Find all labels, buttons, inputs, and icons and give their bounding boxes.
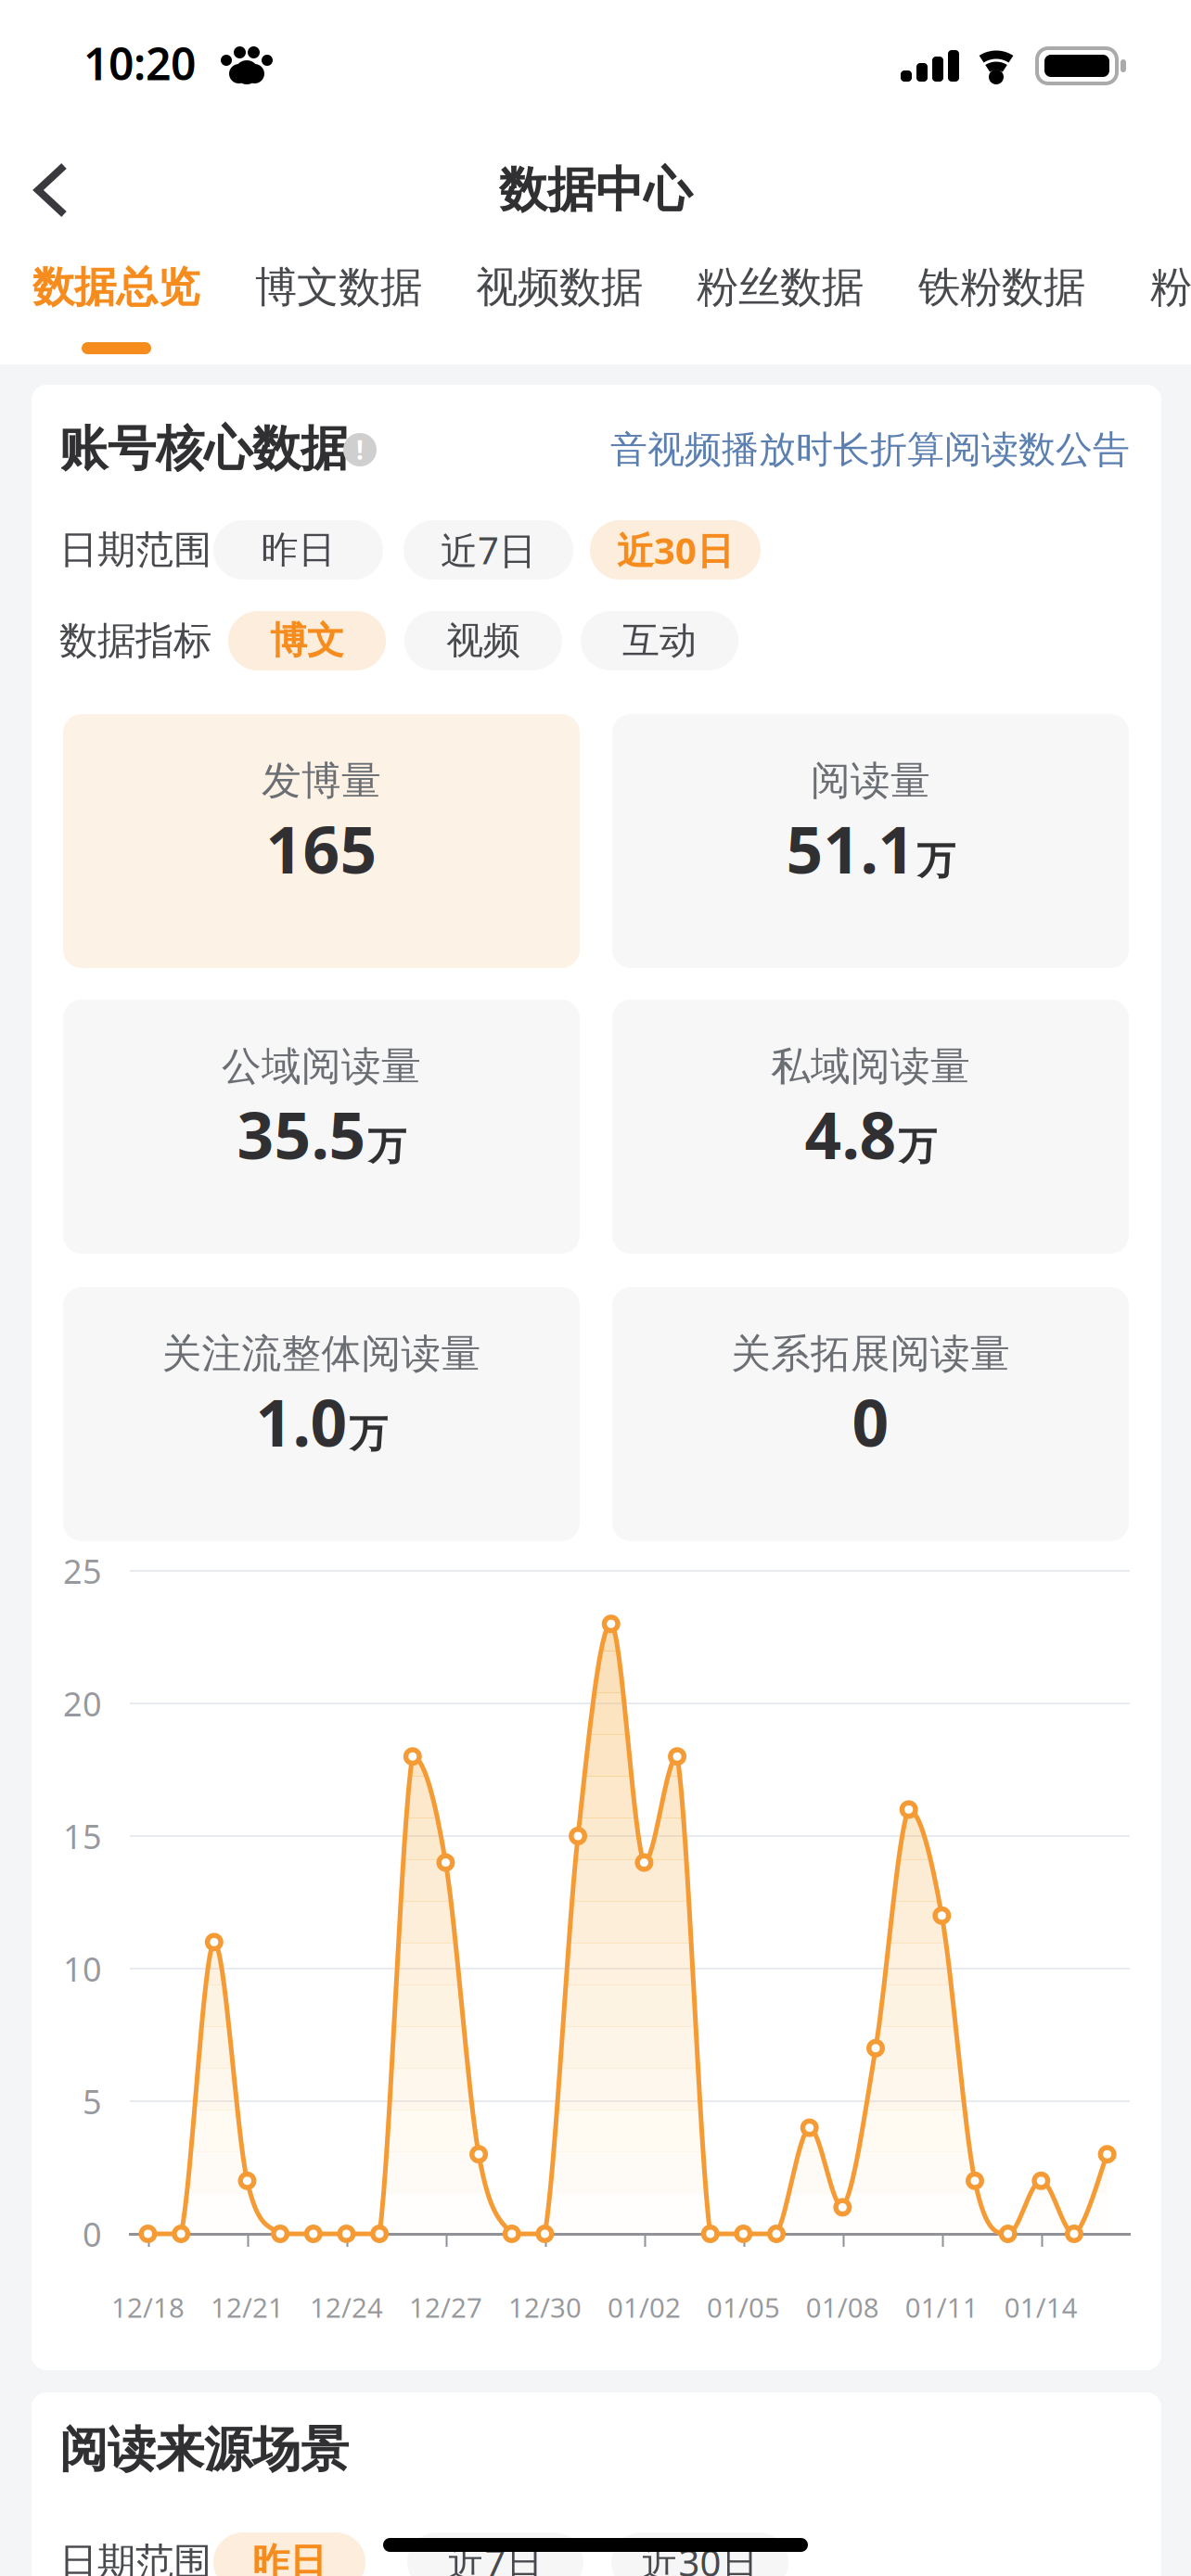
button[interactable]: 昨日 xyxy=(213,2532,365,2576)
staticText: 账号核心数据 xyxy=(59,419,349,478)
staticText: 数据中心 xyxy=(499,161,692,220)
staticText: 近7日 xyxy=(448,2537,543,2576)
staticText: 12/27 xyxy=(409,2289,482,2325)
button[interactable]: 关注流整体阅读量 xyxy=(63,1287,580,1541)
staticText: 关系拓展阅读量 xyxy=(731,1330,1010,1378)
staticText: 近30日 xyxy=(617,525,734,574)
staticText: 1.0 xyxy=(256,1379,347,1464)
staticText: 万 xyxy=(368,1123,406,1170)
button[interactable]: 昨日 xyxy=(213,520,383,580)
button[interactable]: 粉丝数据 xyxy=(673,236,887,338)
button[interactable]: 铁粉数据 xyxy=(895,236,1108,338)
staticText: 铁粉数据 xyxy=(918,262,1085,313)
staticText: 视频 xyxy=(446,618,520,663)
staticText: ! xyxy=(356,432,364,467)
button[interactable]: 私域阅读量 xyxy=(612,1000,1129,1254)
button[interactable]: 说明 xyxy=(339,429,380,470)
staticText: 万 xyxy=(349,1410,387,1457)
staticText: 15 xyxy=(63,1814,102,1858)
button[interactable]: 发博量 xyxy=(63,714,580,968)
staticText: 165 xyxy=(266,806,377,891)
staticText: 阅读量 xyxy=(811,756,930,805)
staticText: 近30日 xyxy=(641,2537,758,2576)
staticText: 12/24 xyxy=(310,2289,383,2325)
staticText: 日期范围 xyxy=(59,526,211,573)
staticText: 0 xyxy=(852,1379,889,1464)
button[interactable]: 粉丝服务 xyxy=(1127,236,1191,338)
staticText: 博文 xyxy=(270,618,344,663)
staticText: 10:20 xyxy=(83,33,196,93)
staticText: 10 xyxy=(63,1946,102,1991)
staticText: 4.8 xyxy=(805,1091,896,1177)
staticText: 12/30 xyxy=(508,2289,581,2325)
staticText: 01/02 xyxy=(607,2289,681,2325)
staticText: 关注流整体阅读量 xyxy=(162,1330,481,1378)
button[interactable]: 数据总览 xyxy=(9,236,223,338)
staticText: 数据指标 xyxy=(59,617,211,664)
staticText: 昨日 xyxy=(252,2539,327,2576)
button[interactable]: 近7日 xyxy=(407,2532,583,2576)
button[interactable]: 博文 xyxy=(228,611,386,670)
button[interactable]: 音视频播放时长折算阅读数公告 xyxy=(555,422,1130,478)
button[interactable]: 视频数据 xyxy=(453,236,666,338)
staticText: 近7日 xyxy=(441,525,536,574)
button[interactable]: 近30日 xyxy=(590,520,761,580)
staticText: 25 xyxy=(63,1549,102,1593)
button[interactable]: 关系拓展阅读量 xyxy=(612,1287,1129,1541)
staticText: 20 xyxy=(63,1681,102,1726)
staticText: 35.5 xyxy=(237,1091,366,1177)
staticText: 0 xyxy=(83,2212,102,2256)
staticText: 12/18 xyxy=(111,2289,185,2325)
button[interactable]: 公域阅读量 xyxy=(63,1000,580,1254)
staticText: 01/11 xyxy=(905,2289,978,2325)
staticText: 日期范围 xyxy=(59,2539,211,2576)
button[interactable]: 博文数据 xyxy=(232,236,445,338)
staticText: 12/21 xyxy=(211,2289,284,2325)
staticText: 阅读来源场景 xyxy=(59,2420,349,2480)
staticText: 万 xyxy=(898,1123,936,1170)
staticText: 数据总览 xyxy=(32,262,199,313)
button[interactable]: 返回 xyxy=(15,144,108,236)
staticText: 博文数据 xyxy=(255,262,422,313)
staticText: 视频数据 xyxy=(476,262,643,313)
staticText: 01/08 xyxy=(806,2289,879,2325)
staticText: 01/14 xyxy=(1004,2289,1078,2325)
staticText: 音视频播放时长折算阅读数公告 xyxy=(610,427,1130,472)
button[interactable]: 近30日 xyxy=(611,2532,788,2576)
staticText: 5 xyxy=(83,2079,102,2123)
staticText: 01/05 xyxy=(707,2289,780,2325)
button[interactable]: 视频 xyxy=(404,611,562,670)
button[interactable]: 近7日 xyxy=(403,520,573,580)
staticText: 互动 xyxy=(622,618,697,663)
staticText: 51.1 xyxy=(786,806,915,891)
button[interactable]: 互动 xyxy=(581,611,738,670)
staticText: 发博量 xyxy=(262,756,381,805)
staticText: 万 xyxy=(917,837,955,884)
staticText: 公域阅读量 xyxy=(222,1042,421,1091)
staticText: 粉丝服务 xyxy=(1150,262,1191,313)
staticText: 私域阅读量 xyxy=(771,1042,970,1091)
staticText: 昨日 xyxy=(261,527,335,573)
staticText: 粉丝数据 xyxy=(697,262,864,313)
button[interactable]: 阅读量 xyxy=(612,714,1129,968)
